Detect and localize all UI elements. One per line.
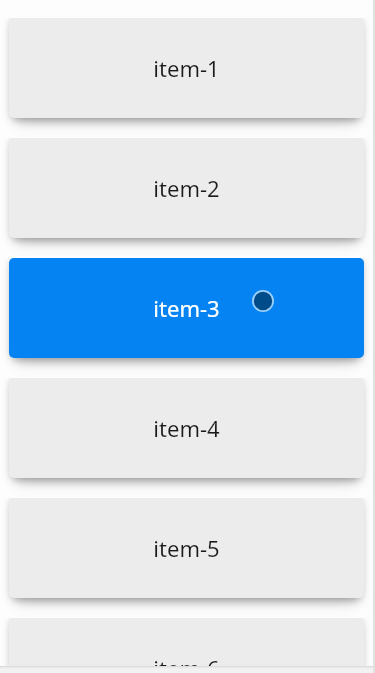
staticText: item-5 — [153, 533, 220, 563]
button[interactable]: item-2 — [9, 138, 364, 238]
staticText: item-6 — [153, 653, 220, 666]
button[interactable]: item-6 — [9, 618, 364, 666]
staticText: item-1 — [153, 53, 220, 83]
button[interactable]: item-4 — [9, 378, 364, 478]
staticText: item-2 — [153, 173, 220, 203]
button[interactable]: item-1 — [9, 18, 364, 118]
staticText: item-4 — [153, 413, 220, 443]
button[interactable]: item-3 — [9, 258, 364, 358]
button[interactable]: item-5 — [9, 498, 364, 598]
staticText: item-3 — [153, 293, 220, 323]
other: Selected — [252, 290, 274, 312]
